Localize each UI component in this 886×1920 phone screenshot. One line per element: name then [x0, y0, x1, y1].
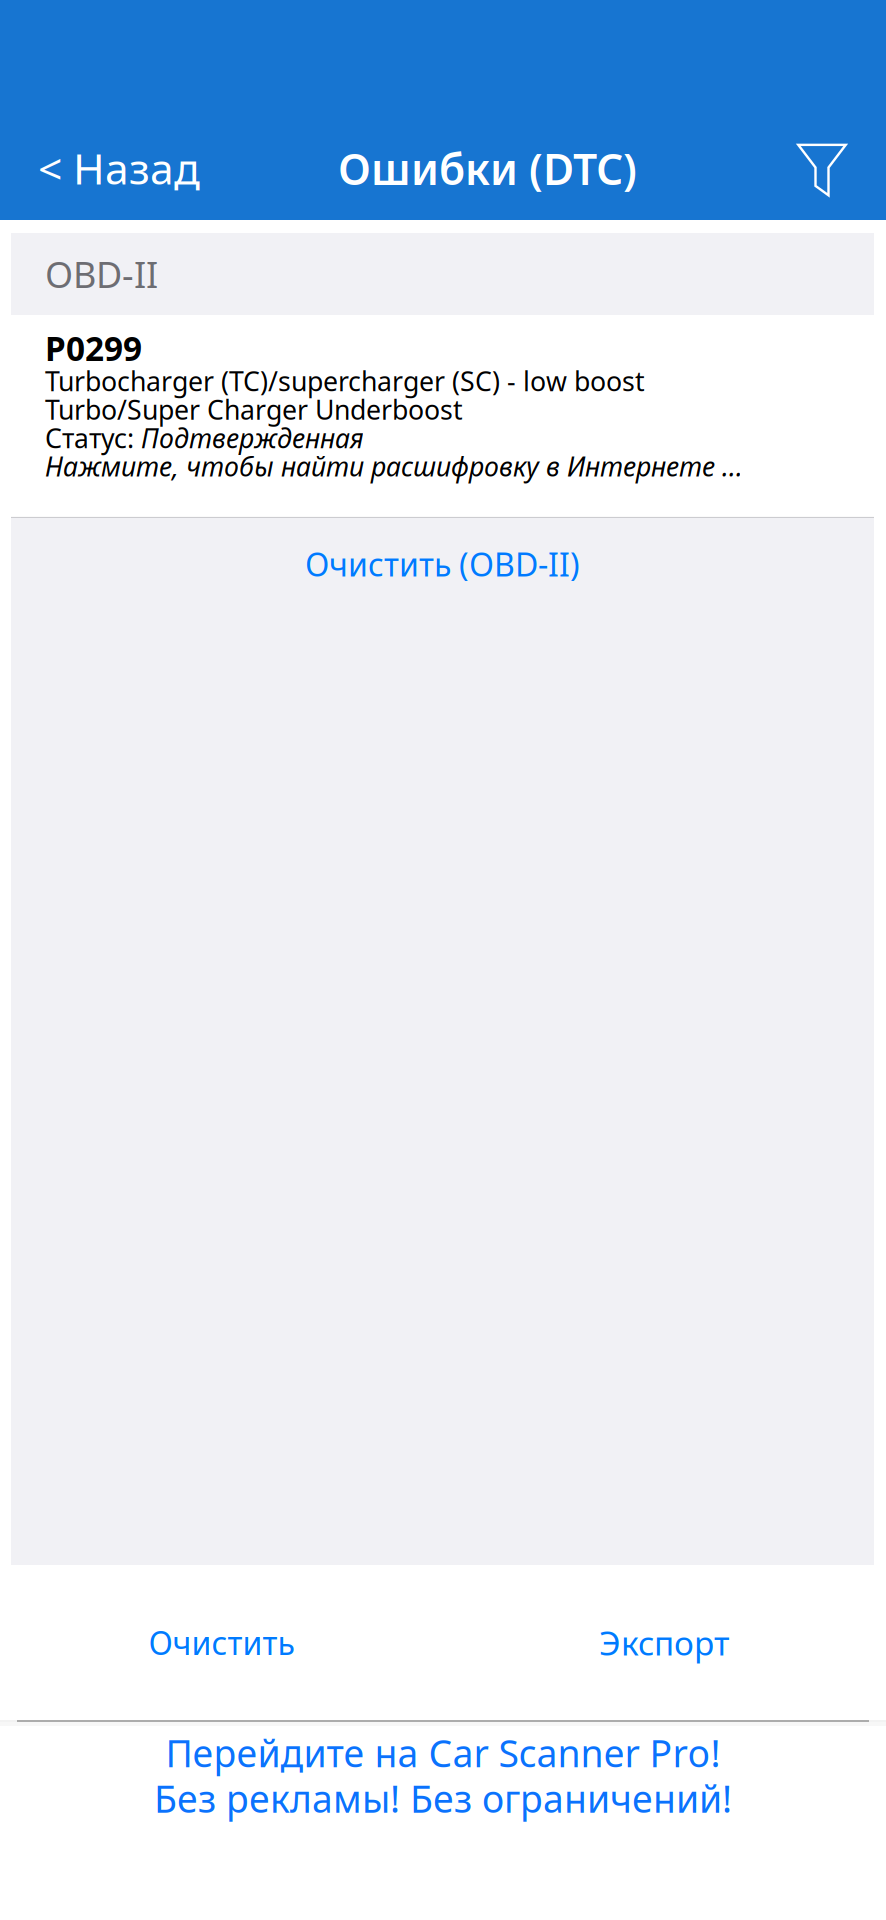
staticText: P0299	[45, 326, 142, 370]
button[interactable]: < Назад	[0, 132, 230, 208]
button[interactable]: Filter	[767, 137, 886, 202]
staticText: < Назад	[38, 140, 200, 196]
button[interactable]: P0299	[11, 315, 874, 517]
button[interactable]: Экспорт	[443, 1592, 886, 1693]
staticText: Turbocharger (TC)/supercharger (SC) - lo…	[45, 363, 645, 399]
staticText: Turbo/Super Charger Underboost	[45, 392, 463, 427]
staticText: Очистить	[148, 1621, 294, 1664]
staticText: Перейдите на Car Scanner Pro!	[165, 1728, 720, 1778]
button[interactable]: Очистить (OBD-II)	[11, 518, 874, 613]
staticText: Нажмите, чтобы найти расшифровку в Интер…	[45, 448, 743, 484]
staticText: Экспорт	[599, 1620, 730, 1665]
staticText: Статус: Подтвержденная	[45, 420, 364, 455]
staticText: Ошибки (DTC)	[338, 140, 637, 197]
button[interactable]: Перейдите на Car Scanner Pro!	[0, 1726, 886, 1841]
button[interactable]: Очистить	[0, 1593, 443, 1692]
staticText: Очистить (OBD-II)	[305, 543, 580, 585]
staticText: OBD-II	[45, 250, 158, 298]
staticText: Без рекламы! Без ограничений!	[154, 1774, 732, 1823]
